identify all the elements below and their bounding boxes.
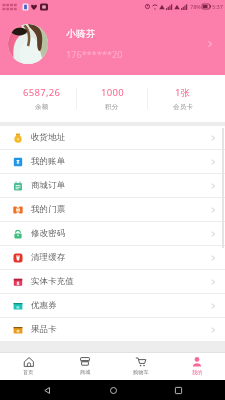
staticText: 果品卡 (31, 324, 57, 335)
staticText: 176******20 (66, 48, 123, 60)
button[interactable]: 1000 (77, 75, 147, 122)
staticText: 我的门票 (31, 204, 66, 215)
staticText: 1张 (175, 86, 191, 99)
button[interactable]: 优惠券 (0, 294, 225, 317)
staticText: 1000 (101, 86, 124, 99)
button[interactable]: 收货地址 (0, 126, 225, 149)
button[interactable]: Recents (171, 383, 185, 397)
button[interactable]: 6587,26 (7, 75, 76, 122)
button[interactable]: 我的门票 (0, 198, 225, 221)
staticText: 我的 (192, 369, 203, 376)
button[interactable]: 商城订单 (0, 174, 225, 197)
staticText: 余额 (35, 103, 49, 111)
button[interactable]: Home (106, 383, 120, 397)
staticText: 78% (190, 3, 201, 10)
button[interactable]: 首页 (0, 353, 57, 380)
staticText: 收货地址 (31, 132, 66, 143)
staticText: 小骑芬 (66, 28, 97, 40)
staticText: 会员卡 (173, 103, 194, 111)
button[interactable]: 商城 (57, 353, 113, 380)
button[interactable]: 我的账单 (0, 150, 225, 173)
staticText: 实体卡充值 (31, 276, 74, 287)
button[interactable]: 果品卡 (0, 318, 225, 341)
staticText: 5:37 (212, 3, 223, 10)
button[interactable]: 修改密码 (0, 222, 225, 245)
staticText: 我的账单 (31, 156, 66, 167)
staticText: 清理缓存 (31, 252, 66, 263)
staticText: 商城订单 (31, 180, 66, 191)
staticText: 首页 (23, 369, 34, 376)
staticText: 6587,26 (23, 86, 61, 99)
staticText: 修改密码 (31, 228, 66, 239)
button[interactable]: 购物车 (113, 353, 169, 380)
staticText: 优惠券 (31, 300, 57, 311)
button[interactable]: 实体卡充值 (0, 270, 225, 293)
staticText: 商城 (80, 369, 91, 376)
button[interactable]: Back (40, 383, 54, 397)
staticText: 购物车 (133, 369, 149, 376)
button[interactable]: 1张 (148, 75, 218, 122)
staticText: 积分 (105, 103, 119, 111)
button[interactable]: 清理缓存 (0, 246, 225, 269)
button[interactable]: 我的 (169, 353, 225, 380)
button[interactable]: Settings (203, 37, 217, 51)
button[interactable]: Avatar (8, 24, 48, 64)
